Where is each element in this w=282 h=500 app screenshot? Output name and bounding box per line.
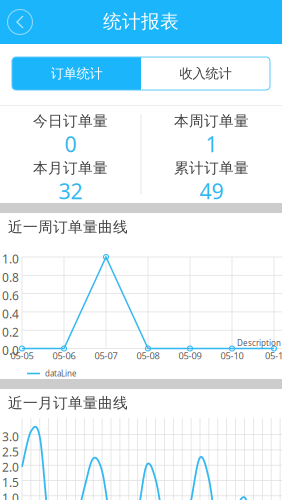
staticText: 05-07	[94, 349, 117, 362]
staticText: 收入统计	[179, 65, 231, 82]
staticText: 2.0	[2, 459, 19, 475]
staticText: 0.0	[2, 342, 19, 358]
staticText: 2.5	[2, 444, 19, 460]
button[interactable]: 收入统计	[141, 57, 270, 90]
staticText: dataLine	[45, 368, 77, 379]
staticText: Description	[237, 337, 281, 348]
staticText: 05-09	[178, 349, 201, 362]
staticText: 32	[58, 177, 82, 205]
staticText: 0.6	[2, 288, 19, 303]
staticText: 近一周订单量曲线	[8, 218, 128, 236]
staticText: 1.0	[2, 490, 19, 500]
staticText: 1.0	[2, 251, 19, 267]
staticText: 本周订单量	[174, 112, 249, 130]
button[interactable]: Back	[4, 6, 36, 38]
staticText: 3.0	[2, 429, 19, 444]
staticText: 0	[64, 130, 76, 158]
staticText: 05-10	[220, 349, 243, 362]
staticText: 今日订单量	[33, 112, 108, 130]
staticText: 订单统计	[50, 65, 102, 82]
staticText: 本月订单量	[33, 159, 108, 177]
staticText: 05-06	[52, 349, 75, 362]
staticText: 累计订单量	[174, 159, 249, 177]
staticText: 近一月订单量曲线	[8, 394, 128, 412]
staticText: 1.5	[2, 474, 19, 490]
staticText: 统计报表	[103, 10, 179, 33]
button[interactable]: 订单统计	[12, 57, 141, 90]
staticText: 49	[199, 177, 223, 205]
staticText: 1	[205, 130, 217, 158]
staticText: 05-1	[265, 349, 282, 362]
staticText: 05-05	[10, 349, 33, 362]
staticText: 0.8	[2, 269, 19, 285]
staticText: 0.4	[2, 306, 19, 322]
staticText: 05-08	[136, 349, 159, 362]
staticText: 0.2	[2, 324, 19, 340]
